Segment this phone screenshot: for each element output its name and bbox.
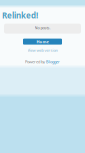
button[interactable]: View web version [27, 48, 57, 53]
staticText: Relinked! [2, 10, 38, 21]
staticText: Blogger [46, 59, 60, 64]
button[interactable]: Home [23, 39, 62, 45]
staticText: No posts. [34, 25, 50, 30]
staticText: Home [36, 39, 48, 44]
staticText: View web version [27, 48, 57, 53]
staticText: Powered by [25, 59, 45, 64]
